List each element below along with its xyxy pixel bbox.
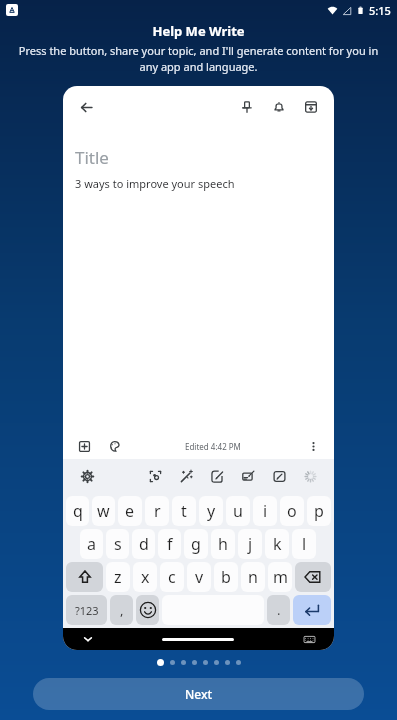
- button[interactable]: l: [292, 529, 316, 559]
- button[interactable]: Enter: [293, 595, 331, 625]
- staticText: j: [248, 533, 253, 555]
- staticText: b: [221, 566, 231, 588]
- button[interactable]: ?123: [66, 595, 107, 625]
- staticText: u: [233, 500, 243, 522]
- staticText: v: [195, 566, 204, 588]
- staticText: e: [125, 500, 135, 522]
- button[interactable]: Hide keyboard: [79, 630, 97, 648]
- button[interactable]: z: [106, 562, 130, 592]
- button[interactable]: Colour: [103, 435, 125, 457]
- staticText: ?123: [75, 603, 99, 618]
- button[interactable]: x: [133, 562, 157, 592]
- button[interactable]: Back: [73, 94, 99, 120]
- staticText: y: [207, 500, 216, 522]
- button[interactable]: p: [307, 496, 331, 526]
- button[interactable]: Draw: [267, 464, 291, 488]
- staticText: r: [154, 500, 161, 522]
- staticText: 3 ways to improve your speech: [75, 176, 235, 191]
- button[interactable]: m: [268, 562, 292, 592]
- button[interactable]: i: [253, 496, 277, 526]
- staticText: s: [114, 533, 122, 555]
- button[interactable]: b: [214, 562, 238, 592]
- staticText: q: [73, 500, 83, 522]
- button[interactable]: Add: [73, 435, 95, 457]
- staticText: Press the button, share your topic, and …: [18, 43, 379, 74]
- staticText: Next: [185, 686, 213, 702]
- button[interactable]: t: [172, 496, 196, 526]
- staticText: Help Me Write: [0, 22, 397, 40]
- staticText: Edited 4:42 PM: [185, 441, 241, 452]
- button[interactable]: Archive: [298, 94, 324, 120]
- staticText: z: [114, 566, 122, 588]
- staticText: o: [287, 500, 297, 522]
- button[interactable]: Shift: [66, 562, 103, 592]
- staticText: x: [141, 566, 150, 588]
- button[interactable]: k: [265, 529, 289, 559]
- staticText: 5:15: [369, 3, 391, 18]
- button[interactable]: Pin: [234, 94, 260, 120]
- staticText: d: [139, 533, 149, 555]
- button[interactable]: f: [158, 529, 181, 559]
- button[interactable]: j: [238, 529, 262, 559]
- staticText: Title: [75, 146, 109, 169]
- button[interactable]: g: [184, 529, 208, 559]
- button[interactable]: y: [199, 496, 223, 526]
- button[interactable]: Clipboard: [236, 464, 260, 488]
- button[interactable]: r: [145, 496, 169, 526]
- button[interactable]: Settings: [75, 464, 99, 488]
- button[interactable]: s: [106, 529, 129, 559]
- button[interactable]: c: [160, 562, 184, 592]
- button[interactable]: Next: [33, 678, 364, 710]
- button[interactable]: Emoji: [136, 595, 159, 625]
- staticText: i: [263, 500, 268, 522]
- staticText: n: [248, 566, 258, 588]
- button[interactable]: q: [66, 496, 89, 526]
- button[interactable]: Lens: [143, 464, 167, 488]
- staticText: f: [167, 533, 173, 555]
- button[interactable]: n: [241, 562, 265, 592]
- button[interactable]: Backspace: [295, 562, 331, 592]
- button[interactable]: .: [267, 595, 290, 625]
- button[interactable]: Reminder: [266, 94, 292, 120]
- staticText: t: [181, 500, 187, 522]
- staticText: c: [168, 566, 176, 588]
- staticText: w: [97, 500, 110, 522]
- button[interactable]: w: [92, 496, 115, 526]
- staticText: l: [302, 533, 307, 555]
- staticText: .: [277, 601, 281, 619]
- button[interactable]: Loading: [298, 464, 322, 488]
- button[interactable]: h: [211, 529, 235, 559]
- staticText: g: [191, 533, 201, 555]
- button[interactable]: v: [187, 562, 211, 592]
- staticText: h: [218, 533, 228, 555]
- button[interactable]: More options: [302, 435, 324, 457]
- button[interactable]: Change keyboard: [300, 630, 318, 648]
- button[interactable]: Help me write: [174, 464, 198, 488]
- button[interactable]: u: [226, 496, 250, 526]
- button[interactable]: ,: [110, 595, 133, 625]
- staticText: p: [314, 500, 324, 522]
- staticText: m: [273, 566, 288, 588]
- staticText: ,: [120, 601, 124, 619]
- button[interactable]: d: [132, 529, 155, 559]
- button[interactable]: Edit: [205, 464, 229, 488]
- button[interactable]: o: [280, 496, 304, 526]
- staticText: k: [273, 533, 282, 555]
- staticText: a: [87, 533, 96, 555]
- button[interactable]: e: [118, 496, 142, 526]
- button[interactable]: a: [80, 529, 103, 559]
